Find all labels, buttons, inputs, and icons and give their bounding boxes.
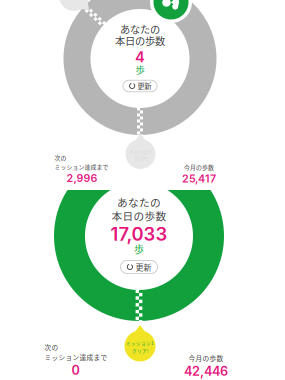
staticText: 0 — [71, 362, 79, 378]
staticText: クリア! — [134, 156, 147, 162]
staticText: あなたの — [120, 22, 160, 36]
button[interactable]: 更新 — [120, 260, 157, 273]
staticText: クリア! — [132, 348, 148, 354]
staticText: 更新 — [135, 261, 151, 273]
staticText: ミッション1 — [129, 148, 151, 154]
staticText: 4 — [135, 48, 145, 66]
staticText: 歩 — [134, 242, 144, 256]
staticText: 本日の歩数 — [115, 33, 165, 48]
staticText: 本日の歩数 — [111, 208, 166, 223]
staticText: 今月の歩数 — [188, 353, 223, 363]
staticText: 2,996 — [66, 171, 97, 184]
staticText: 次の — [54, 154, 66, 162]
button[interactable]: 更新 — [123, 80, 157, 92]
staticText: ミッション1 — [126, 340, 154, 346]
staticText: 17,033 — [110, 223, 167, 245]
staticText: 次の — [44, 342, 58, 352]
staticText: 歩 — [135, 63, 144, 76]
staticText: ミッション達成まで — [54, 162, 108, 171]
staticText: 今月の歩数 — [184, 163, 214, 171]
staticText: 25,417 — [182, 172, 216, 185]
staticText: 更新 — [137, 81, 151, 91]
staticText: 42,446 — [184, 363, 228, 379]
staticText: あなたの — [117, 194, 161, 210]
staticText: ミッション達成まで — [44, 352, 107, 362]
